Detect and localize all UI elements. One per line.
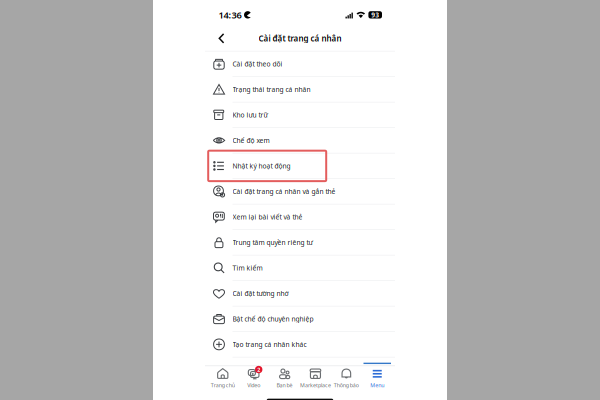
button[interactable]: 2: [238, 366, 269, 393]
button[interactable]: Tìm kiếm: [205, 255, 395, 281]
staticText: Cài đặt theo dõi: [232, 59, 282, 68]
button[interactable]: Back: [212, 28, 231, 49]
staticText: Marketplace: [300, 382, 331, 389]
staticText: Kho lưu trữ: [232, 110, 267, 119]
button[interactable]: Bật chế độ chuyên nghiệp: [205, 306, 395, 332]
staticText: Menu: [370, 382, 384, 389]
staticText: Trang chủ: [211, 382, 235, 389]
button[interactable]: Tạo trang cá nhân khác: [205, 332, 395, 357]
button[interactable]: Marketplace: [300, 366, 331, 393]
staticText: Thông báo: [334, 382, 359, 389]
button[interactable]: Cài đặt trang cá nhân và gắn thẻ: [205, 179, 395, 204]
button[interactable]: Kho lưu trữ: [205, 102, 395, 128]
staticText: Xem lại bài viết và thẻ: [232, 212, 302, 221]
staticText: Chế độ xem: [232, 136, 269, 145]
button[interactable]: Thông báo: [331, 366, 362, 393]
staticText: Cài đặt trang cá nhân và gắn thẻ: [232, 187, 335, 196]
staticText: Trạng thái trang cá nhân: [232, 85, 310, 94]
button[interactable]: Bạn bè: [269, 366, 300, 393]
staticText: Video: [247, 382, 260, 389]
staticText: 93: [371, 10, 379, 19]
button[interactable]: Menu: [362, 366, 393, 393]
staticText: 2: [257, 366, 260, 373]
staticText: Cài đặt tường nhớ: [232, 289, 288, 298]
button[interactable]: Trung tâm quyền riêng tư: [205, 230, 395, 255]
button[interactable]: Nhật ký hoạt động: [205, 153, 395, 179]
button[interactable]: Trang chủ: [207, 366, 238, 393]
button[interactable]: Trạng thái trang cá nhân: [205, 77, 395, 102]
button[interactable]: Chế độ xem: [205, 128, 395, 153]
button[interactable]: Cài đặt tường nhớ: [205, 281, 395, 306]
staticText: Bạn bè: [277, 382, 293, 389]
staticText: Trung tâm quyền riêng tư: [232, 238, 312, 247]
staticText: Cài đặt trang cá nhân: [258, 33, 341, 44]
staticText: Nhật ký hoạt động: [232, 161, 290, 170]
staticText: Tạo trang cá nhân khác: [232, 340, 306, 349]
staticText: 14:36: [218, 9, 241, 21]
staticText: Bật chế độ chuyên nghiệp: [232, 314, 313, 323]
button[interactable]: Cài đặt theo dõi: [205, 51, 395, 77]
staticText: Tìm kiếm: [232, 263, 262, 272]
button[interactable]: Xem lại bài viết và thẻ: [205, 204, 395, 230]
